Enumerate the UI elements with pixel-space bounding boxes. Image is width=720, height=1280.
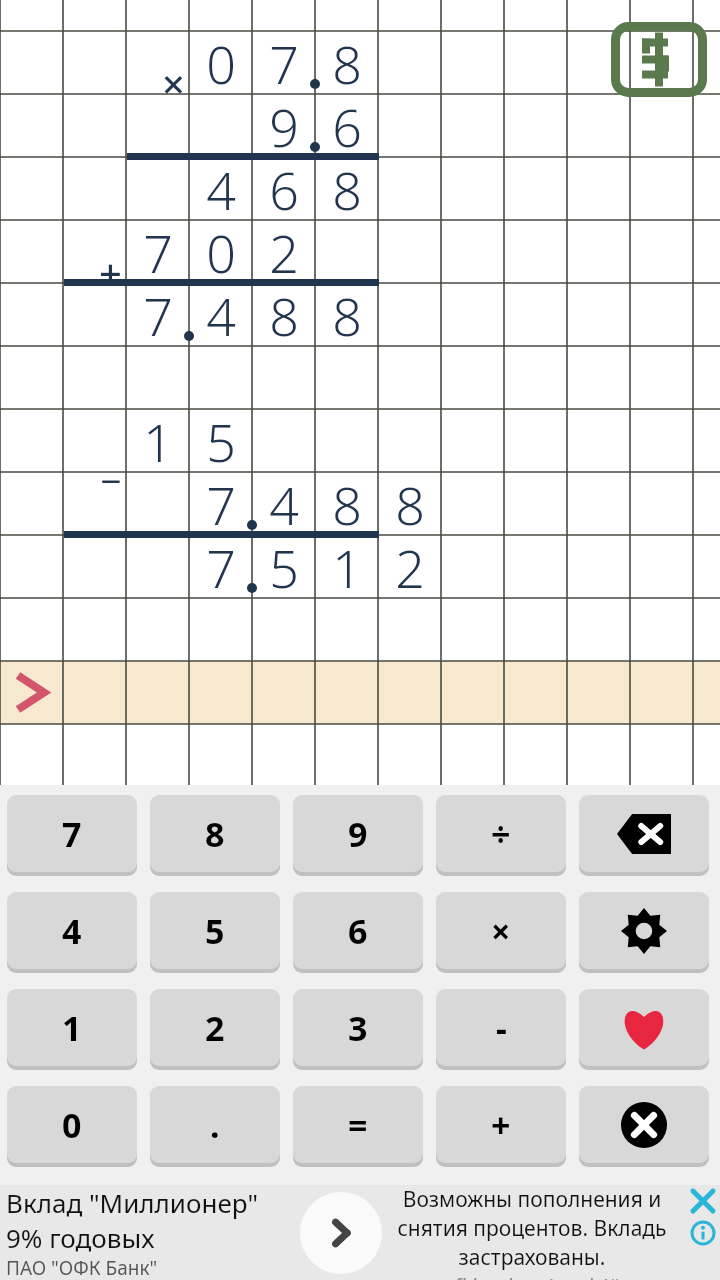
staticText: Возможны пополнения и снятия процентов. … bbox=[382, 1185, 682, 1272]
button[interactable]: 6 bbox=[293, 892, 423, 969]
button[interactable]: 7 bbox=[7, 795, 137, 872]
staticText: 8 bbox=[332, 280, 362, 349]
button[interactable]: Close ad bbox=[687, 1185, 719, 1217]
button[interactable]: Backspace bbox=[579, 795, 709, 872]
staticText: ПАО "ОФК Банк" bbox=[6, 1255, 158, 1280]
staticText: 1 bbox=[332, 532, 362, 601]
staticText: 3 bbox=[348, 1005, 368, 1051]
button[interactable]: 8 bbox=[150, 795, 280, 872]
staticText: - bbox=[496, 1005, 507, 1051]
button[interactable]: Вклад "Миллионер" bbox=[0, 1185, 720, 1280]
staticText: × bbox=[491, 908, 511, 954]
staticText: 5 bbox=[269, 532, 299, 601]
button[interactable]: 2 bbox=[150, 989, 280, 1066]
staticText: 4 bbox=[206, 280, 236, 349]
staticText: 7 bbox=[269, 28, 299, 97]
staticText: = bbox=[348, 1102, 368, 1148]
staticText: 6 bbox=[269, 154, 299, 223]
staticText: . bbox=[210, 1102, 220, 1148]
button[interactable]: × bbox=[436, 892, 566, 969]
staticText: Вклад "Миллионер" bbox=[6, 1185, 259, 1220]
button[interactable]: 9 bbox=[293, 795, 423, 872]
staticText: 6 bbox=[348, 908, 368, 954]
staticText: 4 bbox=[269, 469, 299, 538]
staticText: × bbox=[162, 56, 185, 110]
button[interactable]: + bbox=[436, 1086, 566, 1163]
staticText: 4 bbox=[62, 908, 82, 954]
staticText: + bbox=[99, 245, 122, 299]
staticText: 0 bbox=[62, 1102, 82, 1148]
button[interactable]: . bbox=[150, 1086, 280, 1163]
staticText: 5 bbox=[206, 406, 236, 475]
staticText: ofkbank.ru/mrsk/# bbox=[443, 1272, 621, 1280]
staticText: 5 bbox=[205, 908, 225, 954]
staticText: + bbox=[491, 1102, 511, 1148]
staticText: 8 bbox=[332, 469, 362, 538]
staticText: 9% годовых bbox=[6, 1220, 155, 1255]
staticText: 0 bbox=[206, 28, 236, 97]
button[interactable]: - bbox=[436, 989, 566, 1066]
staticText: ÷ bbox=[491, 811, 511, 857]
staticText: 7 bbox=[206, 532, 236, 601]
staticText: 8 bbox=[205, 811, 225, 857]
button[interactable]: 1 bbox=[7, 989, 137, 1066]
staticText: 7 bbox=[143, 280, 173, 349]
staticText: 9 bbox=[269, 91, 299, 160]
staticText: 8 bbox=[395, 469, 425, 538]
staticText: 2 bbox=[269, 217, 299, 286]
staticText: 6 bbox=[332, 91, 362, 160]
staticText: 1 bbox=[143, 406, 173, 475]
button[interactable]: 5 bbox=[150, 892, 280, 969]
button[interactable]: Favorite bbox=[579, 989, 709, 1066]
staticText: 1 bbox=[62, 1005, 82, 1051]
staticText: 7 bbox=[62, 811, 82, 857]
button[interactable]: Currency bbox=[611, 22, 707, 97]
staticText: 8 bbox=[332, 28, 362, 97]
staticText: _ bbox=[102, 434, 120, 488]
staticText: 2 bbox=[395, 532, 425, 601]
button[interactable]: 4 bbox=[7, 892, 137, 969]
button[interactable]: ÷ bbox=[436, 795, 566, 872]
staticText: 0 bbox=[206, 217, 236, 286]
staticText: 4 bbox=[206, 154, 236, 223]
staticText: 7 bbox=[143, 217, 173, 286]
button[interactable]: Clear bbox=[579, 1086, 709, 1163]
button[interactable]: 3 bbox=[293, 989, 423, 1066]
staticText: 7 bbox=[206, 469, 236, 538]
button[interactable]: 0 bbox=[7, 1086, 137, 1163]
button[interactable]: Settings bbox=[579, 892, 709, 969]
staticText: 8 bbox=[332, 154, 362, 223]
staticText: 8 bbox=[269, 280, 299, 349]
button[interactable]: = bbox=[293, 1086, 423, 1163]
staticText: 9 bbox=[348, 811, 368, 857]
button[interactable]: Ad info bbox=[687, 1217, 719, 1249]
staticText: 2 bbox=[205, 1005, 225, 1051]
